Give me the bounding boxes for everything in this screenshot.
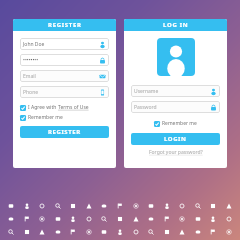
button[interactable]: Icon 43 [194, 228, 202, 236]
button[interactable]: Username [131, 85, 220, 97]
button[interactable]: Icon 24 [132, 215, 140, 223]
button[interactable]: Icon 20 [69, 215, 77, 223]
staticText: REGISTER [48, 21, 82, 29]
staticText: Email [23, 73, 99, 80]
staticText: Password [134, 104, 210, 111]
button[interactable]: Password [131, 101, 220, 113]
button[interactable]: Icon 29 [209, 215, 217, 223]
button[interactable]: Icon 40 [147, 228, 155, 236]
button[interactable]: Icon 16 [7, 215, 15, 223]
button[interactable]: Icon 31 [7, 228, 15, 236]
button[interactable]: LOGIN [131, 133, 220, 145]
button[interactable]: Icon 27 [178, 215, 186, 223]
button[interactable]: I Agree with [20, 104, 89, 111]
button[interactable]: Icon 14 [209, 202, 217, 210]
button[interactable]: Icon 1 [7, 202, 15, 210]
button[interactable]: Icon 45 [225, 228, 233, 236]
button[interactable]: Icon 44 [209, 228, 217, 236]
button[interactable]: Icon 25 [147, 215, 155, 223]
button[interactable]: Icon 21 [85, 215, 93, 223]
button[interactable]: Icon 15 [225, 202, 233, 210]
button[interactable]: Icon 42 [178, 228, 186, 236]
button[interactable]: Icon 6 [85, 202, 93, 210]
staticText: John Doe [23, 41, 99, 48]
staticText: I Agree with [28, 104, 58, 111]
button[interactable]: Icon 30 [225, 215, 233, 223]
button[interactable]: Icon 4 [54, 202, 62, 210]
button[interactable]: Icon 41 [163, 228, 171, 236]
button[interactable]: Icon 7 [100, 202, 108, 210]
button[interactable]: Icon 13 [194, 202, 202, 210]
button[interactable]: Email [20, 70, 109, 82]
staticText: REGISTER [48, 128, 81, 136]
button[interactable]: Forgot your password? [149, 149, 203, 156]
button[interactable]: Icon 18 [38, 215, 46, 223]
button[interactable]: REGISTER [20, 126, 109, 138]
button[interactable]: Icon 33 [38, 228, 46, 236]
staticText: •••••••• [23, 57, 99, 64]
button[interactable]: Icon 35 [69, 228, 77, 236]
button[interactable]: Remember me [20, 114, 63, 121]
button[interactable]: Icon 38 [116, 228, 124, 236]
button[interactable]: Icon 3 [38, 202, 46, 210]
button[interactable]: Icon 37 [100, 228, 108, 236]
button[interactable]: John Doe [20, 38, 109, 50]
button[interactable]: Remember me [154, 120, 197, 127]
button[interactable]: Icon 9 [132, 202, 140, 210]
button[interactable]: Icon 11 [163, 202, 171, 210]
button[interactable]: Icon 32 [23, 228, 31, 236]
button[interactable]: Profile avatar [157, 38, 195, 76]
button[interactable]: Icon 8 [116, 202, 124, 210]
button[interactable]: Icon 17 [23, 215, 31, 223]
staticText: Phone [23, 89, 99, 96]
button[interactable]: Icon 5 [69, 202, 77, 210]
staticText: LOGIN [164, 135, 187, 143]
staticText: Remember me [28, 114, 63, 121]
button[interactable]: Icon 36 [85, 228, 93, 236]
button[interactable]: Icon 19 [54, 215, 62, 223]
button[interactable]: Icon 26 [163, 215, 171, 223]
button[interactable]: Icon 22 [100, 215, 108, 223]
staticText: Terms of Use [58, 104, 89, 111]
button[interactable]: Icon 28 [194, 215, 202, 223]
staticText: Username [134, 88, 210, 95]
button[interactable]: Icon 10 [147, 202, 155, 210]
button[interactable]: Icon 39 [132, 228, 140, 236]
button[interactable]: Icon 12 [178, 202, 186, 210]
button[interactable]: Icon 23 [116, 215, 124, 223]
staticText: LOG IN [163, 21, 189, 29]
staticText: Remember me [162, 120, 197, 127]
button[interactable]: Phone [20, 86, 109, 98]
button[interactable]: •••••••• [20, 54, 109, 66]
button[interactable]: Icon 34 [54, 228, 62, 236]
button[interactable]: Icon 2 [23, 202, 31, 210]
